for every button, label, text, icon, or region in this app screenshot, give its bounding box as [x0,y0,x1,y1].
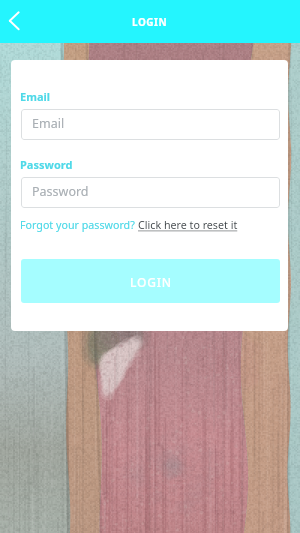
button[interactable]: Password [21,177,280,208]
staticText: LOGIN [130,274,172,290]
staticText: Forgot your password? [20,218,138,233]
staticText: LOGIN [132,15,168,29]
button[interactable]: LOGIN [21,259,280,303]
button[interactable]: Back [0,0,30,43]
button[interactable]: Click here to reset it [138,218,238,233]
staticText: Email [20,89,51,104]
staticText: Email [32,115,65,132]
button[interactable]: Email [21,109,280,140]
staticText: Password [20,157,73,172]
staticText: Password [32,183,89,200]
